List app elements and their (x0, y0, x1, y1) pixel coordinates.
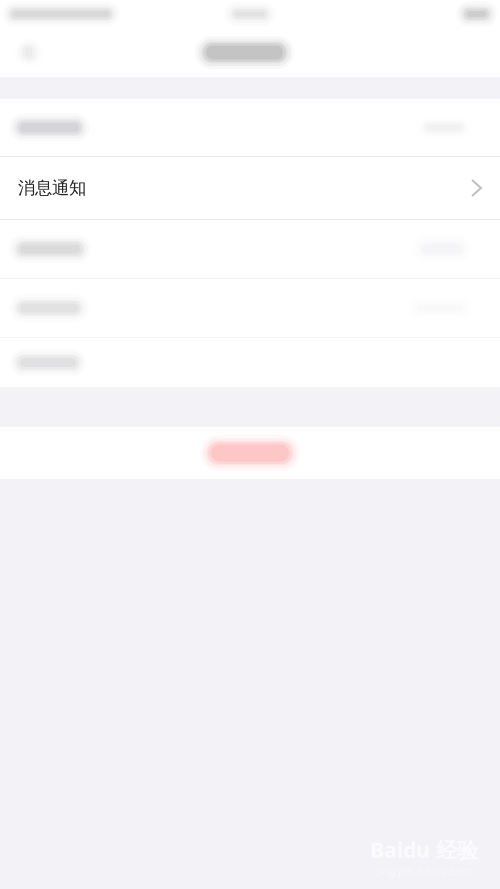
staticText: Baidu 经验 (370, 835, 478, 864)
button[interactable] (200, 435, 300, 471)
button[interactable]: Back (0, 28, 43, 77)
button[interactable] (0, 220, 500, 278)
staticText: 消息通知 (18, 177, 86, 199)
button[interactable]: 消息通知 (0, 157, 500, 219)
button[interactable] (0, 99, 500, 156)
button[interactable] (0, 279, 500, 337)
button[interactable] (0, 338, 500, 387)
